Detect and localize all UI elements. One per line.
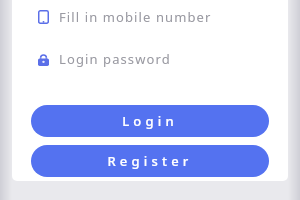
button[interactable]: Password — [12, 42, 288, 76]
other: Mobile number — [38, 10, 49, 24]
other: Password — [38, 53, 49, 66]
staticText: Login password — [59, 50, 171, 68]
staticText: Fill in mobile number — [59, 8, 212, 26]
button[interactable]: Login — [31, 105, 269, 137]
button[interactable]: Register — [31, 145, 269, 177]
staticText: Register — [107, 152, 193, 170]
button[interactable]: Mobile number — [12, 0, 288, 34]
staticText: Login — [122, 112, 178, 130]
